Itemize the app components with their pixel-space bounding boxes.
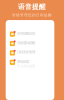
staticText: 智能管理您的日程提醒: [12, 13, 52, 17]
staticText: 日程安排管理: [17, 50, 35, 54]
button[interactable]: 系统设置: [6, 59, 54, 69]
staticText: 系统设置: [17, 59, 29, 64]
staticText: 个人中心设置: [17, 64, 35, 68]
staticText: 语音提醒: [18, 2, 46, 11]
staticText: 语音提醒设置: [17, 31, 35, 36]
button[interactable]: 日程安排管理: [6, 50, 54, 59]
button[interactable]: 消息通知提醒: [6, 41, 54, 50]
button[interactable]: 语音提醒设置: [6, 31, 54, 41]
staticText: 消息通知提醒: [17, 41, 35, 45]
